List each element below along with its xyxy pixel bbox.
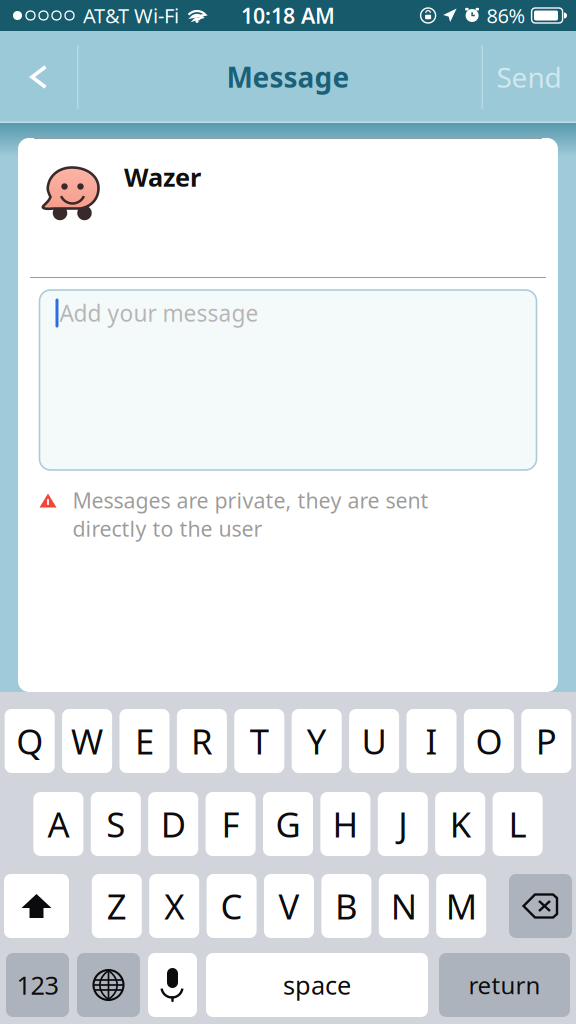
button[interactable]: 123 (6, 953, 69, 1017)
button[interactable]: space (206, 953, 428, 1017)
staticText: A (47, 801, 69, 847)
staticText: Q (16, 718, 43, 764)
staticText: T (250, 718, 269, 764)
staticText: S (106, 801, 125, 847)
button[interactable]: U (349, 709, 399, 773)
staticText: G (275, 801, 300, 847)
button[interactable]: C (207, 874, 257, 938)
staticText: R (191, 718, 213, 764)
staticText: D (161, 801, 186, 847)
staticText: AT&T Wi-Fi (83, 2, 179, 29)
button[interactable]: J (378, 792, 428, 856)
button[interactable]: A (33, 792, 83, 856)
button[interactable]: Z (92, 874, 142, 938)
button[interactable]: N (379, 874, 429, 938)
button[interactable]: Delete (509, 874, 572, 938)
button[interactable]: Q (5, 709, 55, 773)
staticText: Z (107, 883, 127, 929)
button[interactable]: Next keyboard (77, 953, 140, 1017)
staticText: return (468, 969, 540, 1001)
staticText: N (391, 883, 417, 929)
button[interactable]: I (406, 709, 456, 773)
button[interactable]: Send (482, 31, 576, 123)
staticText: Y (307, 718, 327, 764)
staticText: Add your message (59, 298, 258, 328)
staticText: Messages are private, they are sent dire… (72, 486, 428, 543)
staticText: B (335, 883, 358, 929)
button[interactable]: W (62, 709, 112, 773)
staticText: W (71, 718, 103, 764)
button[interactable]: M (436, 874, 486, 938)
staticText: H (332, 801, 358, 847)
staticText: M (446, 883, 477, 929)
staticText: O (475, 718, 502, 764)
staticText: C (221, 883, 243, 929)
button[interactable]: P (521, 709, 571, 773)
button[interactable]: Shift (4, 874, 69, 938)
staticText: space (283, 968, 351, 1002)
button[interactable]: D (148, 792, 198, 856)
button[interactable]: H (320, 792, 370, 856)
button[interactable]: S (91, 792, 141, 856)
staticText: Wazer (124, 160, 201, 194)
staticText: V (278, 883, 299, 929)
staticText: I (425, 718, 437, 764)
button[interactable]: R (177, 709, 227, 773)
staticText: K (450, 801, 471, 847)
staticText: E (135, 718, 154, 764)
button[interactable]: X (149, 874, 199, 938)
staticText: Message (226, 58, 349, 96)
staticText: 86% (487, 2, 526, 29)
button[interactable]: T (234, 709, 284, 773)
staticText: 10:18 AM (241, 1, 335, 30)
staticText: U (362, 718, 387, 764)
staticText: P (536, 718, 557, 764)
button[interactable]: B (321, 874, 371, 938)
button[interactable]: E (119, 709, 169, 773)
button[interactable]: Y (292, 709, 342, 773)
button[interactable]: V (264, 874, 314, 938)
button[interactable]: Back (0, 31, 77, 123)
button[interactable]: Dictate (148, 953, 197, 1017)
button[interactable]: L (493, 792, 543, 856)
staticText: Send (496, 58, 561, 96)
staticText: F (222, 801, 240, 847)
button[interactable]: O (464, 709, 514, 773)
staticText: L (509, 801, 527, 847)
button[interactable]: K (435, 792, 485, 856)
button[interactable]: F (206, 792, 256, 856)
staticText: 123 (16, 968, 58, 1002)
button[interactable]: return (439, 953, 570, 1017)
button[interactable]: G (263, 792, 313, 856)
staticText: X (164, 883, 184, 929)
staticText: J (398, 801, 407, 847)
